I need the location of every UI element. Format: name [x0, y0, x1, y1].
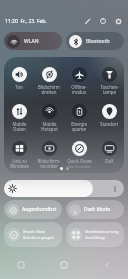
staticText: WLAN	[24, 38, 39, 45]
staticText: Nur Kontakte	[68, 164, 91, 169]
staticText: Dark Mode	[84, 206, 110, 213]
button[interactable]: Ton	[4, 67, 34, 104]
staticText: Quick Share	[67, 158, 92, 164]
button[interactable]: Power off	[97, 15, 109, 27]
button[interactable]: Quick Share	[64, 141, 94, 173]
staticText: Link zu Windows	[10, 158, 29, 169]
staticText: Standort	[100, 121, 118, 127]
button[interactable]: Recents	[0, 255, 42, 275]
staticText: Energie sparen	[71, 121, 87, 132]
staticText: Taschen- lampe	[100, 84, 119, 95]
staticText: Smart View	[23, 229, 46, 235]
button[interactable]: Link zu Windows	[4, 141, 34, 173]
button[interactable]: Back	[85, 255, 128, 275]
button[interactable]: Dark Mode	[66, 200, 124, 219]
button[interactable]: Smart View	[4, 222, 62, 247]
button[interactable]: Bildschirm drehen	[34, 67, 64, 104]
button[interactable]: Settings	[112, 15, 124, 27]
staticText: Offline- modus	[71, 84, 87, 95]
button[interactable]: Taschen- lampe	[94, 67, 124, 104]
staticText: Bildschirm spiegeln	[23, 235, 55, 240]
button[interactable]: Bildschirm- recorder	[34, 141, 64, 173]
button[interactable]: Energie sparen	[64, 104, 94, 141]
staticText: SmartThings	[85, 235, 106, 240]
button[interactable]: Gerätesteuerung	[66, 222, 124, 247]
staticText: Augenkomfort	[22, 206, 57, 213]
button[interactable]: Mobile Hotspot	[34, 104, 64, 141]
button[interactable]: Augenkomfort	[4, 200, 62, 219]
staticText: Bluetooth	[86, 38, 110, 45]
staticText: Gerätesteuerung	[85, 229, 119, 235]
button[interactable]: Edit	[82, 15, 94, 27]
button[interactable]: Bluetooth	[66, 32, 124, 50]
button[interactable]: More options	[110, 184, 120, 194]
staticText: Mobile Daten	[12, 121, 27, 132]
staticText: Bildschirm- recorder	[37, 158, 61, 169]
staticText: Ton	[15, 84, 23, 90]
button[interactable]: Standort	[94, 104, 124, 141]
staticText: DeX	[105, 158, 114, 164]
button[interactable]: More options	[4, 180, 124, 197]
button[interactable]: DeX	[94, 141, 124, 173]
button[interactable]: Mobile Daten	[4, 104, 34, 141]
button[interactable]: Home	[42, 255, 85, 275]
staticText: 11:20 Fr., 23. Feb.	[5, 18, 47, 25]
button[interactable]: Offline- modus	[64, 67, 94, 104]
staticText: Mobile Hotspot	[41, 121, 58, 132]
button[interactable]: WLAN	[4, 32, 62, 50]
staticText: Bildschirm drehen	[38, 84, 60, 95]
